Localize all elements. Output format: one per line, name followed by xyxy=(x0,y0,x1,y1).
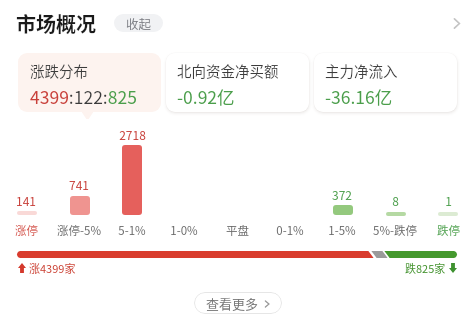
staticText: 主力净流入 xyxy=(325,60,398,81)
staticText: 5%-跌停 xyxy=(373,222,417,239)
staticText: 北向资金净买额 xyxy=(177,60,279,81)
button[interactable]: 主力净流入 xyxy=(314,53,457,112)
staticText: 8 xyxy=(392,192,399,209)
staticText: 4399:122:825 xyxy=(30,84,137,109)
staticText: 741 xyxy=(69,176,89,193)
staticText: 1-0% xyxy=(170,222,198,239)
button[interactable]: 收起 xyxy=(114,14,163,32)
staticText: 跌停 xyxy=(437,222,460,239)
button[interactable]: More xyxy=(438,5,474,41)
staticText: 141 xyxy=(16,192,36,209)
button[interactable]: 北向资金净买额 xyxy=(166,53,309,112)
staticText: 市场概况 xyxy=(16,9,96,38)
button[interactable]: 涨跌分布 xyxy=(18,53,161,112)
staticText: 收起 xyxy=(126,14,152,32)
staticText: 涨跌分布 xyxy=(30,60,88,81)
staticText: 涨停 xyxy=(15,222,38,239)
staticText: 查看更多 xyxy=(206,294,259,313)
staticText: 0-1% xyxy=(276,222,304,239)
staticText: 平盘 xyxy=(226,222,249,239)
staticText: 涨停-5% xyxy=(57,222,101,239)
staticText: 372 xyxy=(332,186,352,203)
staticText: -0.92亿 xyxy=(177,84,235,109)
staticText: 2718 xyxy=(119,126,146,143)
button[interactable]: 查看更多 xyxy=(194,292,282,314)
staticText: 5-1% xyxy=(118,222,146,239)
staticText: 1-5% xyxy=(328,222,356,239)
staticText: 跌825家 xyxy=(405,260,446,276)
staticText: -36.16亿 xyxy=(325,84,393,109)
staticText: 涨4399家 xyxy=(29,260,76,276)
staticText: 1 xyxy=(445,192,452,209)
